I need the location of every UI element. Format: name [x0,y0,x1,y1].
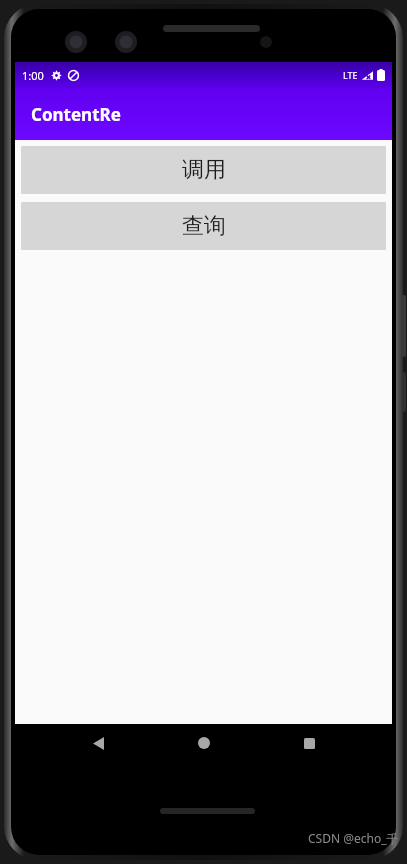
button[interactable]: 查询 [21,202,386,250]
staticText: 1:00 [22,68,44,83]
button[interactable]: Home [182,724,226,762]
staticText: 调用 [182,156,226,184]
staticText: ContentRe [31,103,121,126]
button[interactable]: Recent apps [287,724,331,762]
button[interactable]: 调用 [21,146,386,194]
staticText: LTE [343,69,358,81]
button[interactable]: Back [76,724,120,762]
staticText: 查询 [182,212,226,240]
staticText: CSDN @echo_千 [308,830,399,846]
